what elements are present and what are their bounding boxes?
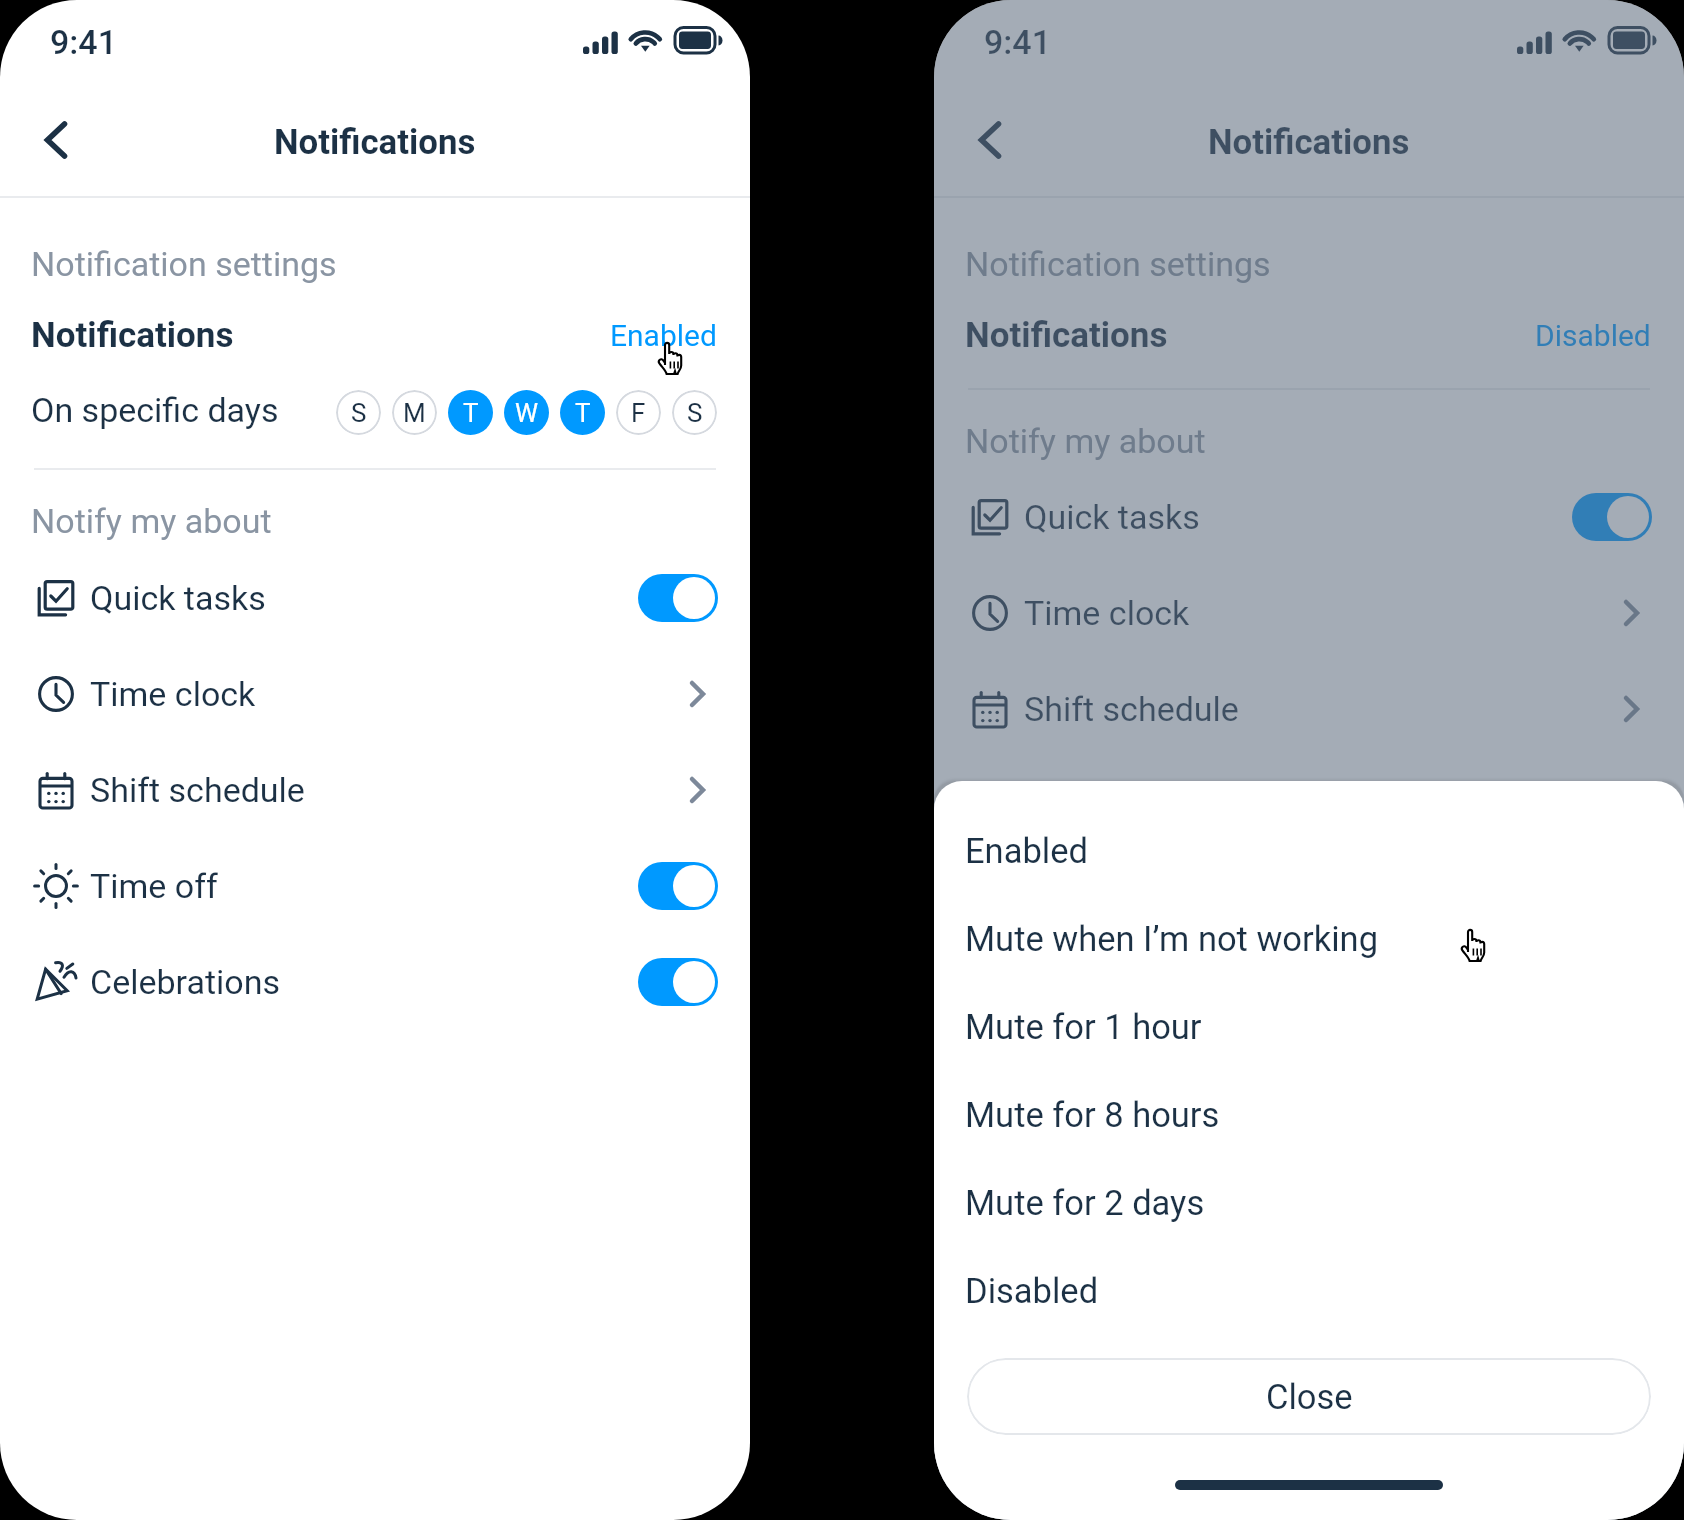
button[interactable]: Celebrations bbox=[0, 934, 750, 1030]
button[interactable]: Mute for 8 hours bbox=[934, 1081, 1684, 1149]
staticText: Notifications bbox=[31, 315, 234, 356]
staticText: T bbox=[575, 398, 591, 428]
staticText: Mute for 8 hours bbox=[965, 1095, 1220, 1135]
staticText: Disabled bbox=[1535, 318, 1651, 353]
button[interactable]: Time clock bbox=[934, 565, 1684, 661]
staticText: Shift schedule bbox=[1024, 689, 1239, 729]
button[interactable]: Toggle Time off bbox=[638, 862, 718, 910]
button[interactable]: S bbox=[336, 390, 381, 435]
staticText: Notification settings bbox=[31, 244, 337, 284]
staticText: Shift schedule bbox=[90, 770, 305, 810]
staticText: Notifications bbox=[274, 122, 476, 163]
staticText: Notify my about bbox=[31, 501, 272, 541]
button[interactable]: F bbox=[616, 390, 661, 435]
staticText: 9:41 bbox=[50, 22, 117, 62]
staticText: Mute for 2 days bbox=[965, 1183, 1205, 1223]
staticText: Disabled bbox=[965, 1271, 1099, 1311]
button[interactable]: Open Time clock bbox=[679, 674, 719, 714]
button[interactable]: Mute when I’m not working bbox=[934, 905, 1684, 973]
button[interactable]: T bbox=[560, 390, 605, 435]
button[interactable]: Close bbox=[967, 1358, 1651, 1435]
button[interactable]: Quick tasks bbox=[934, 469, 1684, 565]
staticText: S bbox=[351, 398, 367, 428]
button[interactable]: Toggle Quick tasks bbox=[1572, 493, 1652, 541]
staticText: T bbox=[463, 398, 479, 428]
staticText: Mute when I’m not working bbox=[965, 919, 1379, 959]
button[interactable]: Enabled bbox=[934, 817, 1684, 885]
staticText: Mute for 1 hour bbox=[965, 1007, 1202, 1047]
button[interactable]: Shift schedule bbox=[0, 742, 750, 838]
staticText: Enabled bbox=[610, 318, 717, 353]
staticText: Notification settings bbox=[965, 244, 1271, 284]
button[interactable]: Time off bbox=[934, 757, 1684, 853]
button[interactable]: Open Shift schedule bbox=[679, 770, 719, 810]
staticText: Time clock bbox=[1024, 593, 1190, 633]
staticText: W bbox=[515, 398, 539, 428]
staticText: Enabled bbox=[965, 831, 1088, 871]
staticText: Notifications bbox=[965, 315, 1168, 356]
button[interactable]: Mute for 1 hour bbox=[934, 993, 1684, 1061]
button[interactable]: Quick tasks bbox=[0, 550, 750, 646]
button[interactable]: Time clock bbox=[0, 646, 750, 742]
staticText: On specific days bbox=[31, 390, 279, 430]
button[interactable]: Time off bbox=[0, 838, 750, 934]
button[interactable]: Back bbox=[28, 112, 84, 168]
button[interactable]: Toggle Quick tasks bbox=[638, 574, 718, 622]
staticText: Notify my about bbox=[965, 421, 1206, 461]
button[interactable]: Toggle Celebrations bbox=[638, 958, 718, 1006]
button[interactable]: Notifications bbox=[0, 312, 750, 358]
staticText: F bbox=[631, 398, 646, 428]
staticText: Celebrations bbox=[90, 962, 281, 1002]
button[interactable]: Back bbox=[962, 112, 1018, 168]
button[interactable]: Celebrations bbox=[934, 853, 1684, 949]
staticText: Notifications bbox=[1208, 122, 1410, 163]
staticText: Quick tasks bbox=[1024, 497, 1200, 537]
button[interactable]: Shift schedule bbox=[934, 661, 1684, 757]
staticText: 9:41 bbox=[984, 22, 1051, 62]
button[interactable]: Notifications bbox=[934, 312, 1684, 358]
button[interactable]: S bbox=[672, 390, 717, 435]
staticText: Close bbox=[1266, 1377, 1353, 1417]
staticText: Time clock bbox=[90, 674, 256, 714]
staticText: Quick tasks bbox=[90, 578, 266, 618]
button[interactable]: Mute for 2 days bbox=[934, 1169, 1684, 1237]
staticText: S bbox=[687, 398, 703, 428]
button[interactable]: Open Shift schedule bbox=[1613, 689, 1653, 729]
button[interactable]: M bbox=[392, 390, 437, 435]
button[interactable]: T bbox=[448, 390, 493, 435]
button[interactable]: Disabled bbox=[934, 1257, 1684, 1325]
button[interactable]: W bbox=[504, 390, 549, 435]
staticText: Time off bbox=[90, 866, 218, 906]
button[interactable]: Open Time clock bbox=[1613, 593, 1653, 633]
staticText: M bbox=[403, 398, 426, 428]
